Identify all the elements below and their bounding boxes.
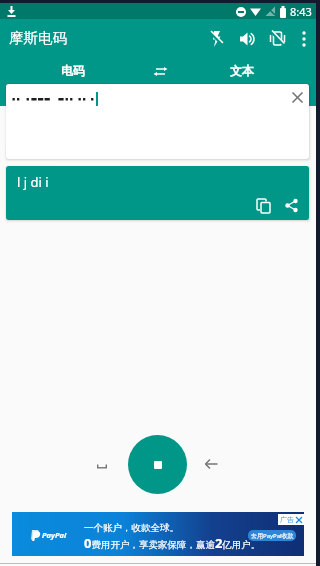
button[interactable]: 电码 bbox=[61, 63, 85, 78]
button[interactable] bbox=[299, 31, 309, 47]
button[interactable] bbox=[205, 459, 218, 469]
staticText: 8:43 bbox=[290, 4, 312, 19]
button[interactable] bbox=[153, 67, 168, 76]
button[interactable]: 去用PayPal收款 bbox=[248, 530, 296, 541]
button[interactable] bbox=[292, 92, 303, 103]
staticText: l j di i bbox=[17, 173, 49, 191]
staticText: 摩斯电码 bbox=[9, 29, 67, 47]
button[interactable] bbox=[269, 30, 286, 47]
button[interactable]: PayPal bbox=[12, 512, 304, 556]
staticText: PayPal bbox=[42, 530, 67, 540]
button[interactable] bbox=[128, 435, 187, 494]
staticText: 0费用开户，享卖家保障，赢逾2亿用户。 bbox=[84, 534, 261, 552]
button[interactable] bbox=[285, 199, 298, 212]
staticText: 广告 bbox=[280, 515, 294, 524]
staticText: 一个账户，收款全球。 bbox=[84, 522, 179, 534]
button[interactable] bbox=[257, 199, 271, 213]
button[interactable]: 文本 bbox=[230, 63, 254, 78]
button[interactable] bbox=[97, 462, 108, 469]
button[interactable] bbox=[239, 31, 255, 47]
button[interactable] bbox=[209, 31, 225, 47]
staticText: 去用PayPal收款 bbox=[251, 532, 294, 540]
